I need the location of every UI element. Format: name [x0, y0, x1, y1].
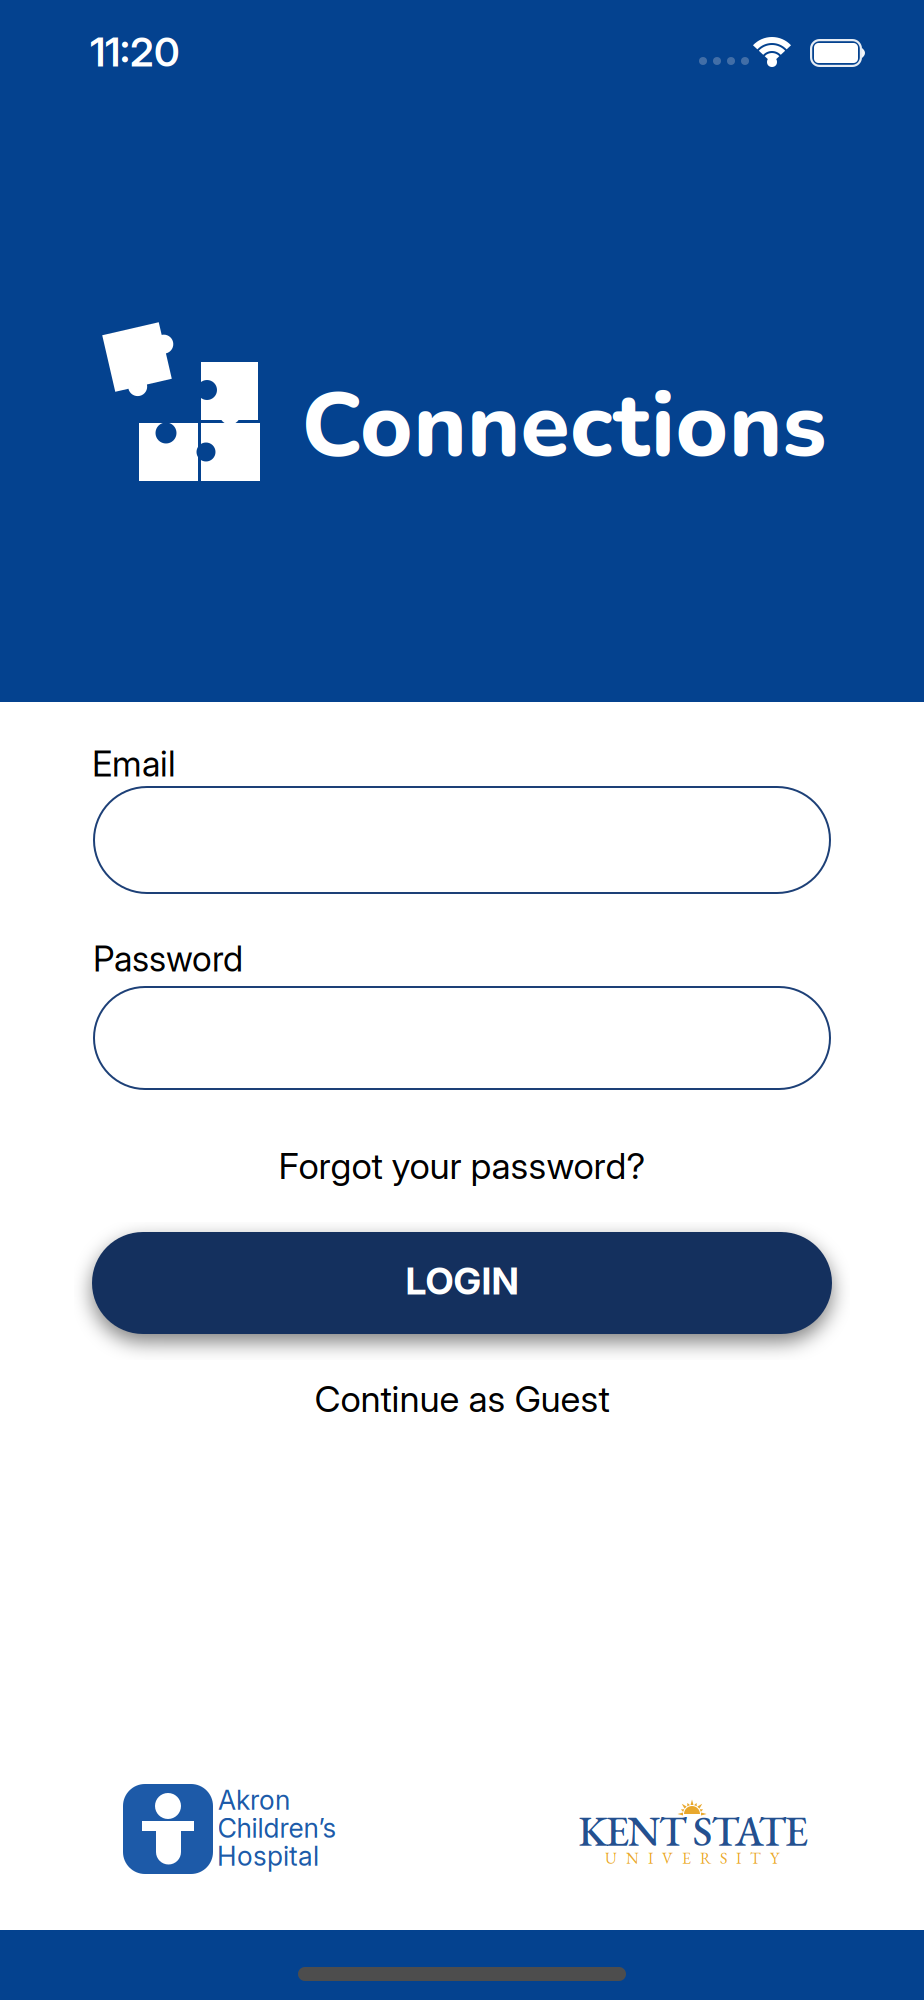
- staticText: Akron: [218, 1784, 290, 1816]
- staticText: Connections: [301, 365, 826, 487]
- staticText: Forgot your password?: [278, 1145, 645, 1187]
- staticText: UNIVERSITY: [605, 1848, 779, 1868]
- button[interactable]: Password: [93, 986, 831, 1090]
- button[interactable]: Forgot your password?: [262, 1137, 661, 1195]
- staticText: LOGIN: [405, 1259, 518, 1303]
- staticText: Continue as Guest: [314, 1378, 609, 1420]
- staticText: Email: [92, 744, 176, 784]
- staticText: Children’s: [217, 1812, 336, 1844]
- staticText: 11:20: [90, 28, 180, 76]
- staticText: Password: [93, 939, 243, 979]
- staticText: Hospital: [217, 1840, 319, 1872]
- staticText: KENT STATE: [578, 1804, 808, 1858]
- button[interactable]: LOGIN: [92, 1232, 832, 1334]
- button[interactable]: Email: [93, 786, 831, 894]
- button[interactable]: Continue as Guest: [298, 1370, 625, 1428]
